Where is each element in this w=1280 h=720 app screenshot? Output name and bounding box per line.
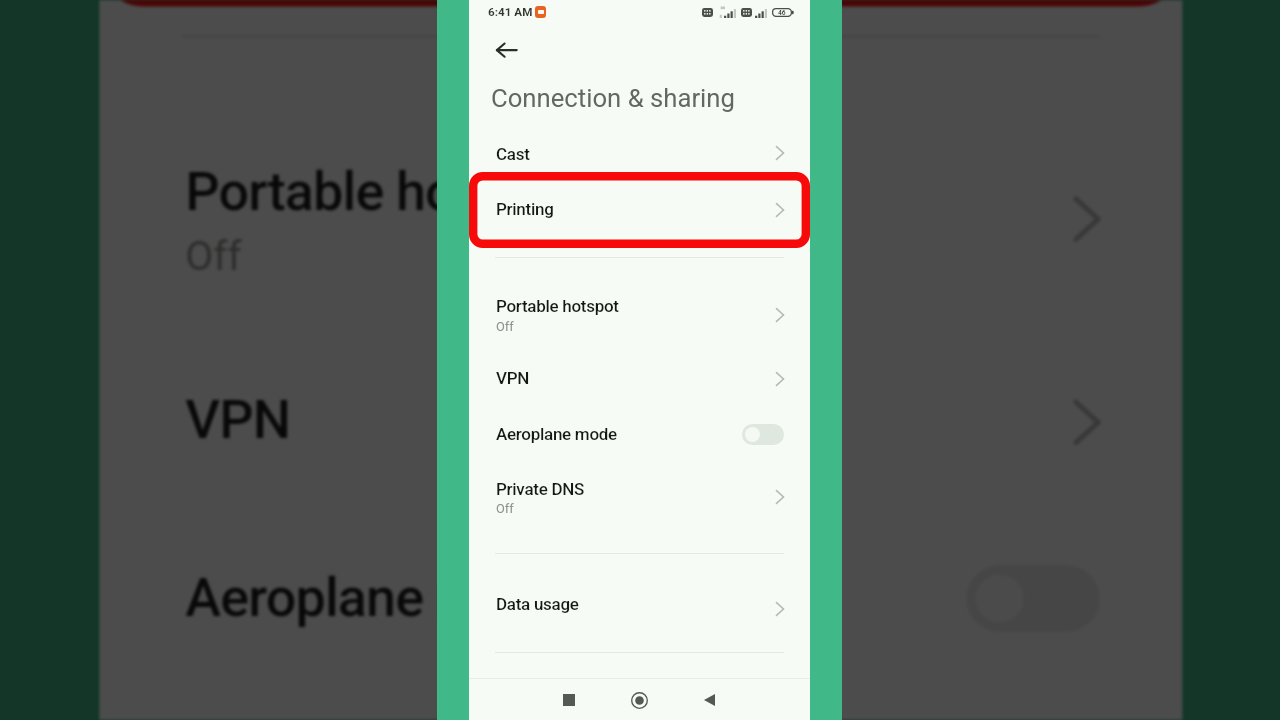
staticText: Cast xyxy=(496,144,530,164)
staticText: Off xyxy=(496,501,514,516)
button[interactable] xyxy=(469,134,810,180)
button[interactable] xyxy=(469,465,810,523)
button[interactable]: Recent apps xyxy=(552,683,586,717)
staticText: Data usage xyxy=(496,594,579,614)
button[interactable]: Back xyxy=(485,34,517,66)
button[interactable] xyxy=(469,357,810,412)
staticText: VPN xyxy=(185,387,293,451)
staticText: Off xyxy=(496,319,514,334)
button[interactable]: Home xyxy=(622,683,656,717)
button[interactable]: Aeroplane mode toggle xyxy=(742,424,784,445)
staticText: 6:41 AM xyxy=(488,5,533,19)
button[interactable]: Back xyxy=(692,683,726,717)
button[interactable] xyxy=(469,180,810,247)
staticText: Aeroplane mode xyxy=(496,424,617,444)
staticText: Printing xyxy=(496,199,554,219)
button[interactable] xyxy=(469,282,810,337)
staticText: Off xyxy=(185,232,242,279)
staticText: Private DNS xyxy=(496,479,585,499)
staticText: Aeroplane mode xyxy=(185,565,569,629)
staticText: Portable hotspot xyxy=(496,296,619,316)
staticText: Portable hotspot xyxy=(185,159,576,222)
staticText: 46 xyxy=(778,9,786,17)
button[interactable] xyxy=(469,580,810,638)
button[interactable] xyxy=(469,412,810,462)
staticText: VPN xyxy=(496,368,530,388)
staticText: Connection & sharing xyxy=(491,83,735,113)
